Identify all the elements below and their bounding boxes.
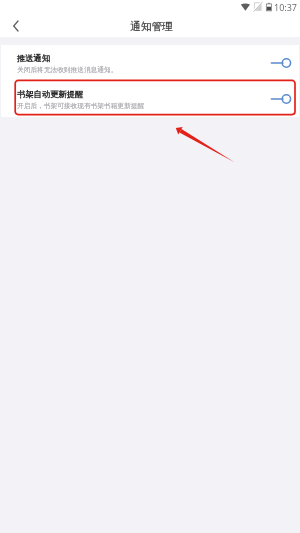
button[interactable]: Toggle: [269, 54, 294, 72]
staticText: 书架自动更新提醒: [17, 89, 84, 99]
staticText: 书架自动更新提醒: [17, 89, 84, 99]
staticText: 推送通知: [17, 53, 51, 63]
staticText: 开启后，书架可接收现有书架书籍更新提醒: [17, 102, 145, 110]
button[interactable]: Back: [2, 13, 28, 39]
button[interactable]: 推送通知: [1, 45, 299, 81]
button[interactable]: 书架自动更新提醒: [1, 81, 299, 117]
staticText: 推送通知: [17, 53, 51, 63]
staticText: 通知管理: [130, 20, 173, 33]
staticText: 通知管理: [130, 20, 173, 33]
button[interactable]: Toggle: [269, 90, 294, 108]
staticText: 关闭后将无法收到推送消息通知。: [17, 66, 118, 74]
staticText: 10:37: [274, 1, 298, 13]
